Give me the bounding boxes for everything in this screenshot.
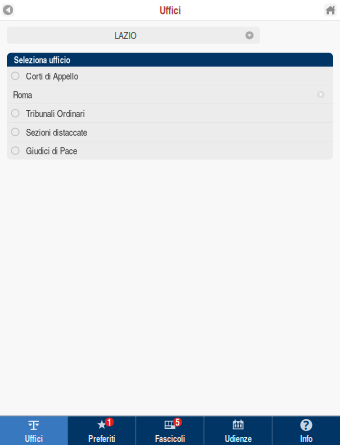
button[interactable]: Sezioni distaccate [7, 123, 333, 141]
staticText: Giudici di Pace [26, 144, 77, 157]
button[interactable]: Home [324, 3, 340, 16]
staticText: Preferiti [88, 432, 115, 445]
staticText: 5 [175, 415, 179, 429]
staticText: Udienze [225, 432, 252, 445]
staticText: Info [300, 432, 312, 445]
staticText: Uffici [159, 2, 180, 18]
button[interactable]: Corti di Appello [7, 67, 333, 85]
staticText: LAZIO [114, 29, 136, 42]
button[interactable]: 1 [68, 416, 136, 445]
staticText: Roma [13, 88, 32, 101]
staticText: Uffici [25, 432, 43, 445]
button[interactable]: Udienze [204, 416, 272, 445]
button[interactable]: Giudici di Pace [7, 142, 333, 160]
button[interactable]: Uffici [0, 416, 67, 445]
button[interactable]: Tribunali Ordinari [7, 104, 333, 122]
button[interactable]: Roma [7, 85, 333, 103]
button[interactable]: ? [273, 416, 340, 445]
button[interactable]: 5 [136, 416, 204, 445]
button[interactable]: Choose district [244, 30, 260, 41]
staticText: Seleziona ufficio [14, 54, 70, 66]
staticText: Fascicoli [155, 432, 185, 445]
staticText: 1 [107, 415, 111, 429]
staticText: Sezioni distaccate [26, 125, 87, 138]
staticText: Corti di Appello [26, 69, 78, 82]
staticText: ? [303, 417, 309, 433]
button[interactable]: Back [0, 3, 14, 16]
staticText: Tribunali Ordinari [26, 107, 85, 120]
